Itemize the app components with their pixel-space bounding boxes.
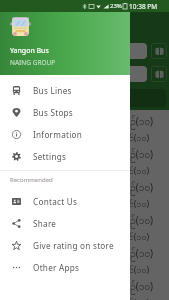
staticText: မှတ်တိုင်(၁၀) xyxy=(106,164,150,176)
button[interactable]: Open map xyxy=(151,43,167,59)
staticText: မှတ်တိုင်(၁၀) xyxy=(106,197,150,209)
button[interactable]: Search xyxy=(8,89,166,107)
staticText: အမှတ်စဉ်(၁၀) xyxy=(100,147,154,163)
staticText: မှတ်တိုင်(၁၀) xyxy=(106,230,150,242)
staticText: Share xyxy=(33,218,57,229)
button[interactable]: Information xyxy=(0,123,130,145)
staticText: 10:38 PM xyxy=(129,2,158,11)
staticText: အမှတ်စဉ်(၁၀) xyxy=(100,279,154,295)
staticText: Settings xyxy=(33,151,67,162)
staticText: မှတ်တိုင်(၁၀) xyxy=(106,131,150,143)
button[interactable]: အမှတ်စဉ်(၁၀) xyxy=(0,143,169,176)
button[interactable]: Settings xyxy=(0,145,130,167)
staticText: 23% xyxy=(110,2,122,10)
staticText: အမှတ်စဉ်(၁၀) xyxy=(100,180,154,196)
button[interactable]: Bus Stops xyxy=(0,101,130,123)
button[interactable]: အမှတ်စဉ်(၁၀) xyxy=(0,110,169,143)
staticText: Recommended xyxy=(10,176,53,184)
button[interactable]: Contact Us xyxy=(0,190,130,212)
staticText: Bus Lines xyxy=(33,85,72,96)
button[interactable]: Share xyxy=(0,212,130,234)
button[interactable]: Other Apps xyxy=(0,256,130,278)
staticText: NAING GROUP xyxy=(10,58,56,67)
button[interactable]: အမှတ်စဉ်(၁၀) xyxy=(0,176,169,209)
button[interactable]: Give rating on store xyxy=(0,234,130,256)
staticText: Information xyxy=(33,129,83,140)
staticText: Contact Us xyxy=(33,196,78,207)
staticText: Yangon Bus xyxy=(10,46,49,56)
button[interactable]: အမှတ်စဉ်(၁၀) xyxy=(0,209,169,242)
staticText: အမှတ်စဉ်(၁၀) xyxy=(100,114,154,130)
staticText: Give rating on store xyxy=(33,240,114,251)
button[interactable]: အမှတ်စဉ်(၁၀) xyxy=(0,242,169,275)
staticText: မှတ်တိုင်(၁၀) xyxy=(106,263,150,275)
staticText: အမှတ်စဉ်(၁၀) xyxy=(100,246,154,262)
staticText: Other Apps xyxy=(33,262,80,273)
button[interactable]: Bus Lines xyxy=(0,79,130,101)
staticText: အမှတ်စဉ်(၁၀) xyxy=(100,213,154,229)
button[interactable]: အမှတ်စဉ်(၁၀) xyxy=(0,275,169,300)
button[interactable]: Open map xyxy=(151,66,167,82)
staticText: Bus Stops xyxy=(33,107,74,118)
staticText: မှတ်တိုင်(၁၀) xyxy=(106,296,150,300)
